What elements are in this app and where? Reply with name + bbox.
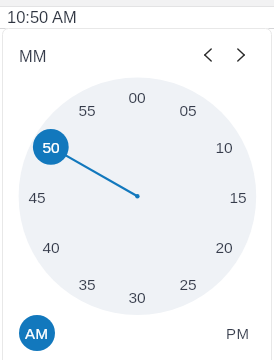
button[interactable]: 05 xyxy=(170,92,206,128)
button[interactable]: 45 xyxy=(19,179,55,215)
staticText: 45 xyxy=(28,189,46,206)
button[interactable]: 25 xyxy=(170,266,206,302)
staticText: 10 xyxy=(215,139,233,156)
button[interactable]: 15 xyxy=(220,179,256,215)
staticText: 55 xyxy=(78,102,96,119)
staticText: 00 xyxy=(128,89,146,106)
button[interactable]: 55 xyxy=(69,92,105,128)
button[interactable]: PM xyxy=(220,315,256,351)
staticText: 30 xyxy=(128,289,146,306)
staticText: 40 xyxy=(42,239,60,256)
staticText: 50 xyxy=(42,139,60,156)
button[interactable]: 40 xyxy=(33,229,69,265)
button[interactable]: 20 xyxy=(206,229,242,265)
button[interactable]: 10 xyxy=(206,129,242,165)
button[interactable]: 30 xyxy=(119,279,155,315)
button[interactable]: Next xyxy=(227,41,255,69)
button[interactable]: MM xyxy=(19,45,47,67)
staticText: PM xyxy=(226,325,250,342)
staticText: AM xyxy=(25,325,49,342)
staticText: 20 xyxy=(215,239,233,256)
staticText: MM xyxy=(19,47,47,65)
staticText: 35 xyxy=(78,276,96,293)
staticText: 15 xyxy=(229,189,247,206)
button[interactable]: 50 xyxy=(33,129,69,165)
button[interactable]: 10:50 AM xyxy=(0,7,274,28)
staticText: 25 xyxy=(179,276,197,293)
button[interactable]: 35 xyxy=(69,266,105,302)
staticText: 10:50 AM xyxy=(7,8,77,26)
staticText: 05 xyxy=(179,102,197,119)
button[interactable]: 00 xyxy=(119,79,155,115)
button[interactable]: Previous xyxy=(194,41,222,69)
button[interactable]: AM xyxy=(19,315,55,351)
